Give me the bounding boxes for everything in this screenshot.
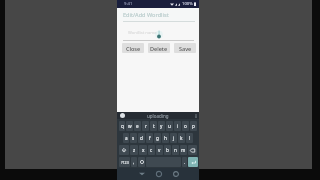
button[interactable]: Shift — [119, 145, 129, 155]
button[interactable]: t — [150, 121, 157, 131]
staticText: d — [140, 135, 143, 141]
staticText: k — [180, 135, 183, 141]
button[interactable]: j — [170, 133, 177, 143]
button[interactable]: r — [142, 121, 149, 131]
button[interactable]: x — [139, 145, 147, 155]
staticText: uploading — [147, 113, 169, 119]
button[interactable]: q — [119, 121, 125, 131]
button[interactable]: m — [180, 145, 187, 155]
button[interactable]: b — [164, 145, 171, 155]
staticText: n — [174, 147, 177, 153]
button[interactable]: Hide keyboard — [136, 168, 148, 180]
staticText: h — [164, 135, 167, 141]
other: Backspace — [190, 148, 195, 153]
button[interactable]: c — [148, 145, 155, 155]
staticText: g — [156, 135, 159, 141]
staticText: j — [173, 135, 175, 141]
button[interactable]: Backspace — [188, 145, 197, 155]
staticText: b — [166, 147, 169, 153]
other: Shift — [122, 148, 126, 152]
button[interactable]: . — [182, 157, 187, 167]
button[interactable]: i — [174, 121, 181, 131]
staticText: Close — [126, 45, 141, 52]
staticText: x — [142, 147, 145, 153]
button[interactable]: p — [190, 121, 197, 131]
staticText: , — [133, 159, 135, 165]
staticText: y — [160, 123, 163, 129]
staticText: 100% — [182, 1, 193, 7]
button[interactable]: g — [154, 133, 161, 143]
button[interactable]: Recents — [170, 168, 182, 180]
button[interactable]: e — [134, 121, 141, 131]
staticText: s — [132, 135, 135, 141]
staticText: p — [192, 123, 195, 129]
staticText: f — [149, 135, 151, 141]
staticText: v — [158, 147, 161, 153]
button[interactable]: f — [146, 133, 153, 143]
button[interactable]: , — [131, 157, 137, 167]
staticText: w — [128, 123, 132, 129]
button[interactable]: w — [126, 121, 133, 131]
staticText: o — [184, 123, 187, 129]
staticText: q — [121, 123, 124, 129]
staticText: Save — [179, 45, 192, 52]
button[interactable]: Close — [122, 43, 144, 53]
staticText: 9:41 — [124, 1, 133, 7]
button[interactable]: n — [172, 145, 179, 155]
button[interactable]: h — [162, 133, 169, 143]
staticText: ?123 — [121, 160, 129, 165]
staticText: e — [136, 123, 139, 129]
staticText: z — [133, 147, 136, 153]
staticText: . — [184, 159, 186, 165]
button[interactable]: u — [166, 121, 173, 131]
staticText: m — [181, 147, 186, 153]
staticText: Delete — [150, 45, 168, 52]
staticText: a — [125, 135, 128, 141]
button[interactable]: Delete — [148, 43, 170, 53]
button[interactable]: o — [182, 121, 189, 131]
other: Emoji — [140, 160, 144, 164]
staticText: Wordlist name — [128, 30, 157, 36]
button[interactable]: a — [123, 133, 129, 143]
button[interactable]: Save — [174, 43, 196, 53]
button[interactable]: Emoji — [138, 157, 145, 167]
staticText: i — [177, 123, 179, 129]
button[interactable]: y — [158, 121, 165, 131]
button[interactable]: s — [130, 133, 137, 143]
staticText: Edit/Add Wordlist — [123, 11, 169, 19]
staticText: c — [150, 147, 153, 153]
staticText: u — [168, 123, 171, 129]
staticText: l — [189, 135, 191, 141]
button[interactable]: Enter — [188, 157, 198, 167]
staticText: r — [145, 123, 147, 129]
button[interactable]: l — [186, 133, 193, 143]
button[interactable]: d — [138, 133, 145, 143]
button[interactable]: Home — [153, 168, 165, 180]
button[interactable]: ?123 — [119, 157, 130, 167]
button[interactable]: v — [156, 145, 163, 155]
staticText: t — [153, 123, 155, 129]
button[interactable]: k — [178, 133, 185, 143]
button[interactable]: z — [130, 145, 138, 155]
